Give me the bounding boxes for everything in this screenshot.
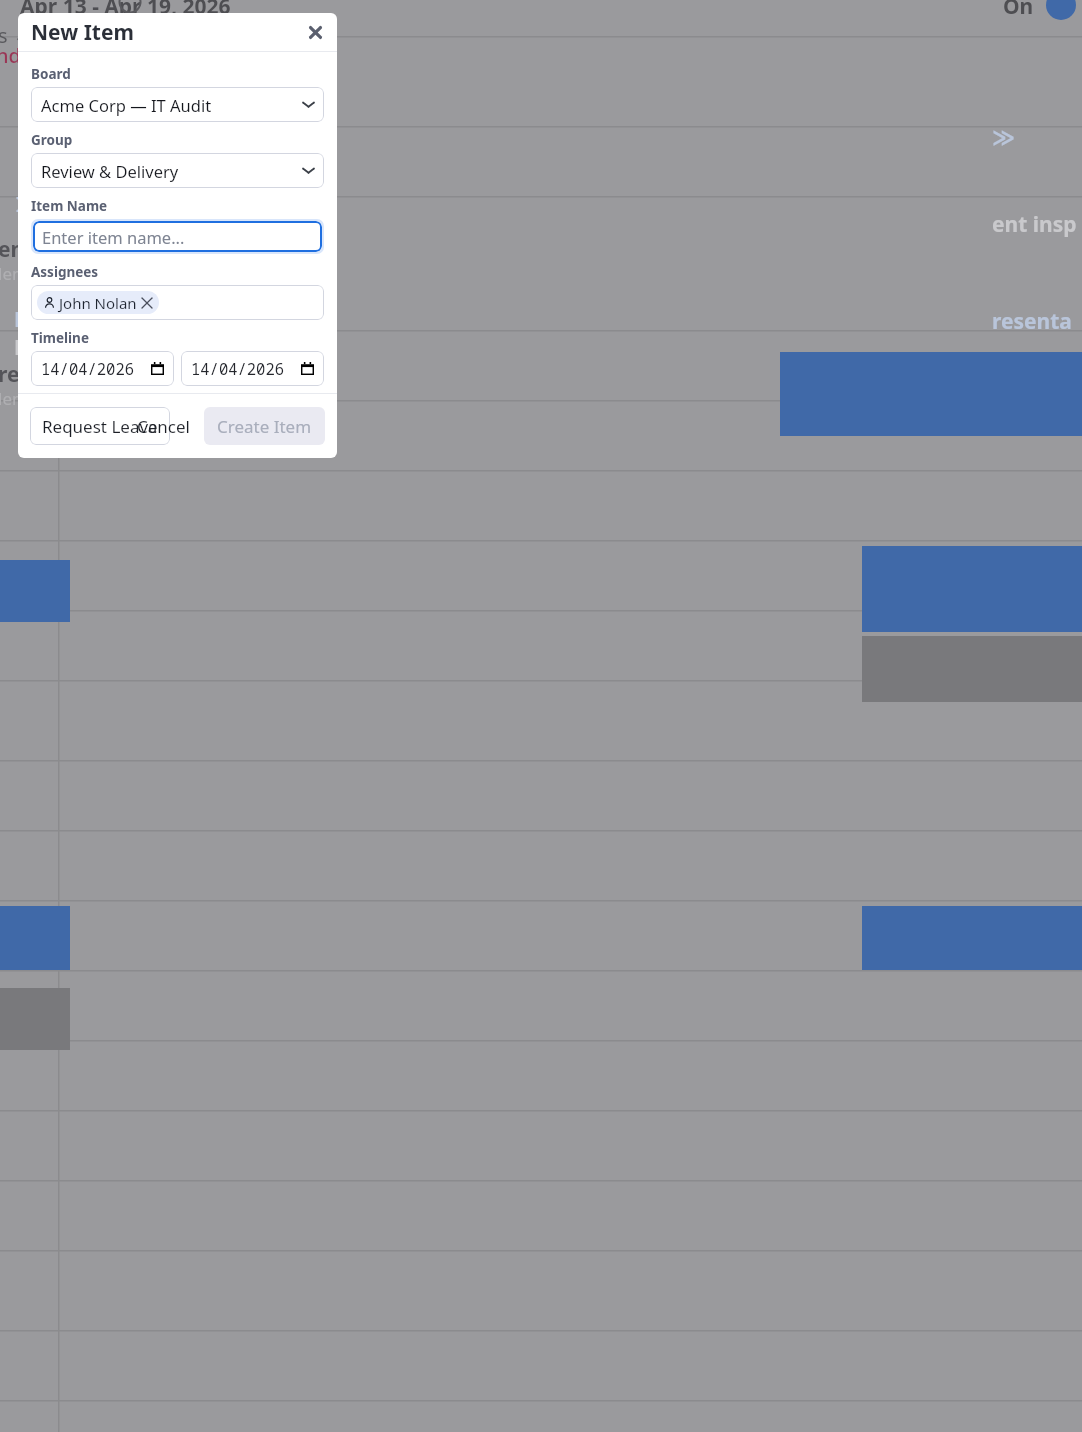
staticText: s ⌄ (0, 22, 30, 49)
staticText: Item Name (31, 197, 108, 215)
staticText: Apr 13 - Apr 19, 2026 (20, 0, 231, 21)
staticText: Board (31, 65, 71, 83)
staticText: 14/04/2026 (41, 358, 135, 379)
other: Pick date (301, 362, 314, 375)
staticText: 14/04/2026 (191, 358, 285, 379)
button[interactable]: Acme Corp — IT Audit (31, 87, 324, 122)
button[interactable]: Request Leave (42, 407, 158, 445)
button[interactable]: John Nolan (31, 285, 324, 320)
staticText: Group (31, 131, 73, 149)
staticText: ement (0, 235, 67, 264)
button[interactable]: 14/04/2026 (181, 351, 324, 386)
staticText: John Nolan (59, 293, 137, 313)
staticText: ≫ (992, 125, 1016, 151)
button[interactable]: Create Item (217, 407, 312, 445)
staticText: Acme Corp — IT Audit (41, 94, 212, 116)
button[interactable]: 14/04/2026 (31, 351, 174, 386)
staticText: Imp (16, 190, 58, 219)
other: Pick date (151, 362, 164, 375)
staticText: Pee (14, 333, 53, 362)
staticText: Cancel (137, 415, 190, 438)
staticText: Timeline (31, 329, 89, 347)
staticText: On (1003, 0, 1034, 21)
staticText: Rem (14, 305, 61, 334)
staticText: Assignees (31, 263, 99, 281)
button[interactable]: Review & Delivery (31, 153, 324, 188)
staticText: Create Item (217, 415, 312, 438)
staticText: revie (0, 360, 50, 389)
staticText: Review & Delivery (41, 160, 179, 182)
button[interactable]: John Nolan (44, 291, 152, 314)
button[interactable]: Enter item name... (33, 221, 322, 252)
staticText: lemo - (0, 387, 49, 410)
other: Remove John Nolan (142, 298, 152, 308)
staticText: Enter item name... (42, 226, 185, 248)
staticText: ent insp (992, 210, 1077, 239)
staticText: nday (0, 42, 43, 69)
staticText: Request Leave (42, 415, 158, 438)
staticText: resenta (992, 307, 1072, 336)
button[interactable]: Cancel (137, 407, 190, 445)
button[interactable]: Close (303, 20, 327, 44)
staticText: New Item (31, 18, 134, 47)
staticText: lemo - (0, 262, 49, 285)
